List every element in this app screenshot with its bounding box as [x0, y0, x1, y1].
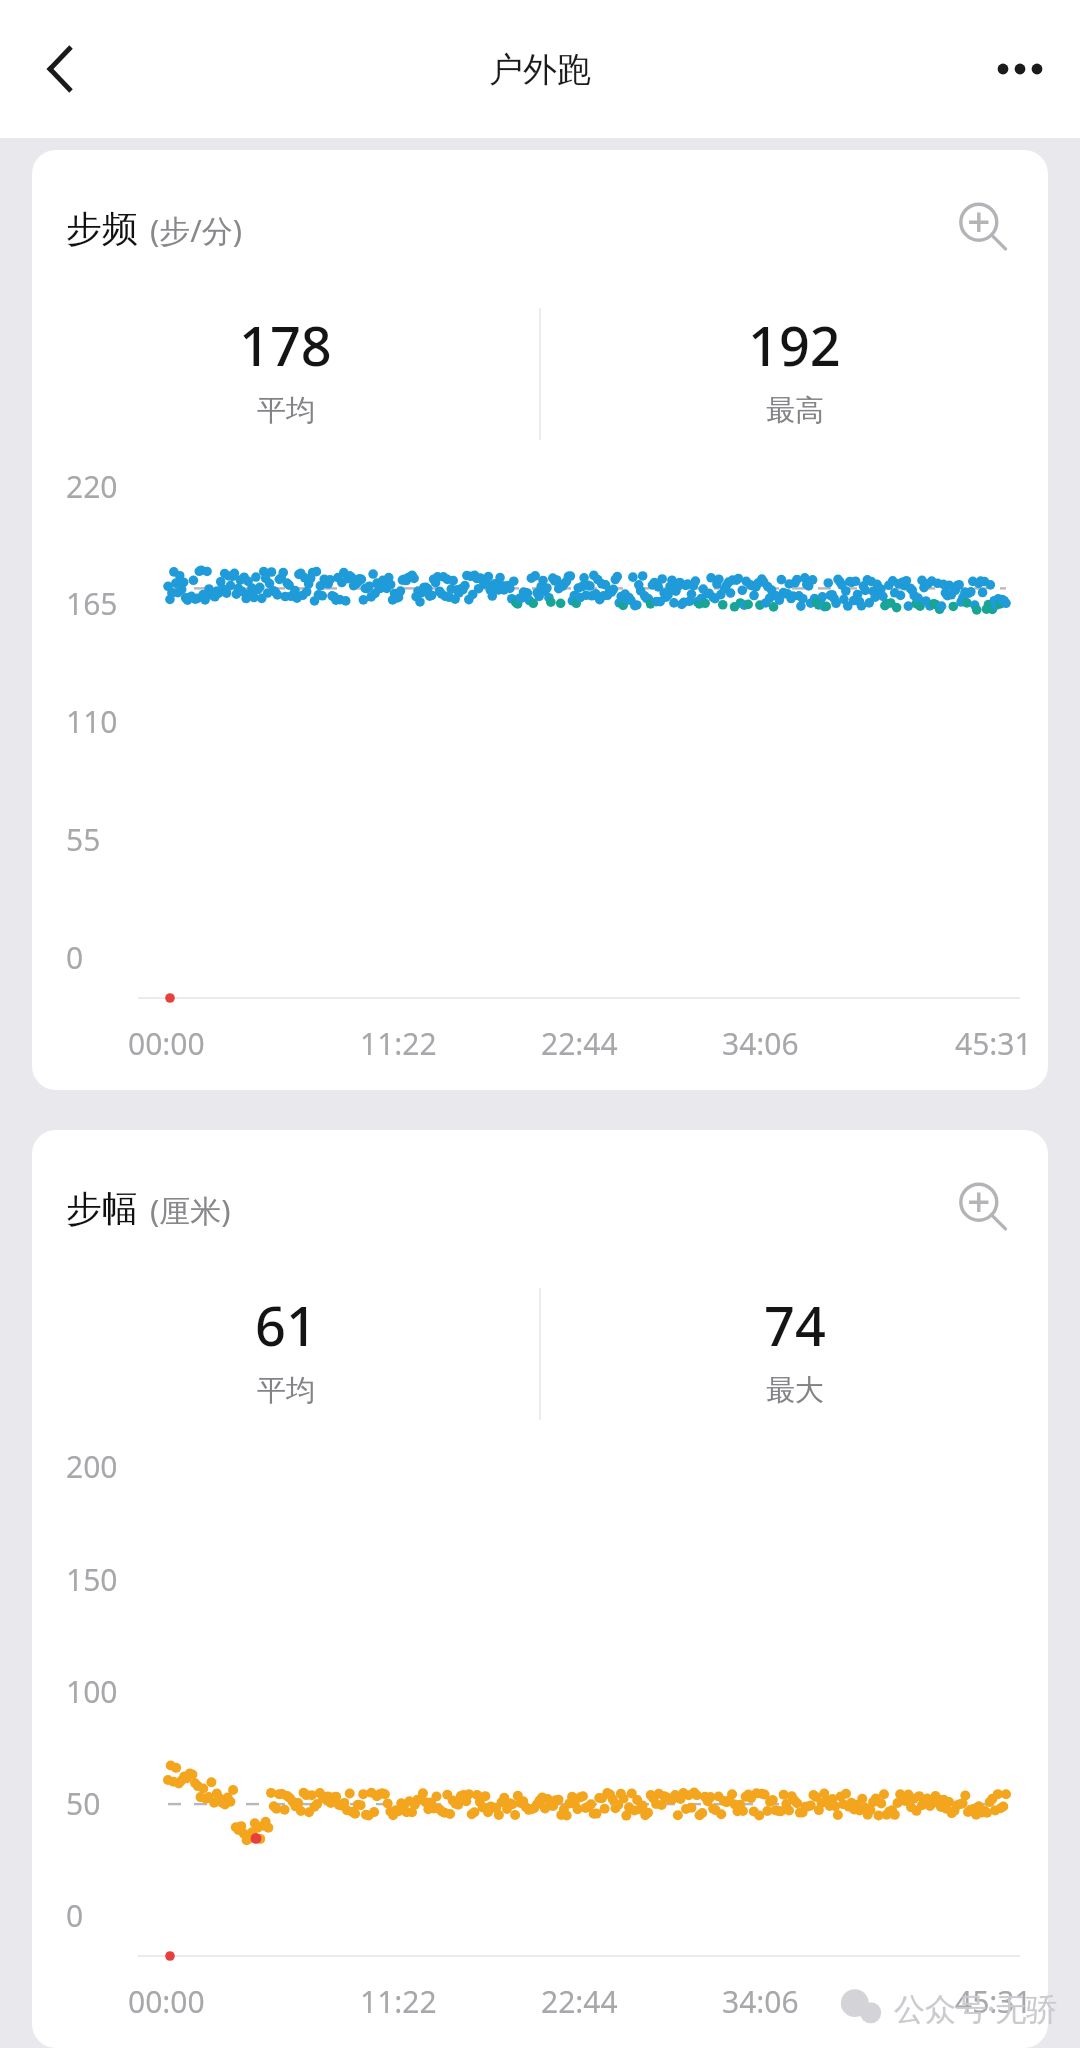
staticText: 最大 [766, 1372, 824, 1409]
staticText: 55 [66, 819, 101, 860]
staticText: 74 [764, 1288, 826, 1362]
staticText: (步/分) [150, 209, 243, 251]
staticText: 220 [66, 466, 118, 507]
staticText: 45:31 [955, 1023, 1032, 1064]
staticText: (厘米) [150, 1189, 231, 1231]
staticText: 110 [66, 701, 118, 742]
staticText: 00:00 [128, 1981, 205, 2022]
staticText: 00:00 [128, 1023, 205, 1064]
button[interactable]: Back [12, 19, 112, 119]
staticText: 100 [66, 1671, 118, 1712]
button[interactable]: 步频 [32, 150, 1048, 1090]
staticText: 0 [66, 1895, 84, 1936]
button[interactable]: Zoom in chart [946, 1170, 1022, 1246]
staticText: 200 [66, 1446, 118, 1487]
staticText: 61 [255, 1288, 317, 1362]
staticText: 平均 [257, 392, 315, 429]
staticText: 11:22 [360, 1023, 437, 1064]
staticText: 150 [66, 1559, 118, 1600]
staticText: 34:06 [722, 1981, 799, 2022]
staticText: 192 [748, 308, 841, 382]
staticText: 步频 [66, 206, 138, 251]
staticText: 165 [66, 583, 118, 624]
staticText: 22:44 [541, 1023, 618, 1064]
staticText: 50 [66, 1783, 101, 1824]
staticText: 0 [66, 937, 84, 978]
staticText: 户外跑 [489, 48, 591, 91]
staticText: 步幅 [66, 1186, 138, 1231]
staticText: 公众号·无骄 [894, 1987, 1058, 2029]
button[interactable]: Zoom in chart [946, 190, 1022, 266]
staticText: 最高 [766, 392, 824, 429]
button[interactable]: More options [970, 19, 1070, 119]
staticText: 45:31 [955, 1981, 1032, 2022]
staticText: 22:44 [541, 1981, 618, 2022]
staticText: 178 [239, 308, 332, 382]
staticText: 平均 [257, 1372, 315, 1409]
button[interactable]: 步幅 [32, 1130, 1048, 2048]
staticText: 34:06 [722, 1023, 799, 1064]
staticText: 11:22 [360, 1981, 437, 2022]
